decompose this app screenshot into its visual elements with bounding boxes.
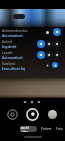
button[interactable]: Foto	[55, 126, 64, 132]
staticText: Automatisch	[2, 33, 23, 38]
button[interactable]: Rotate	[53, 40, 61, 48]
staticText: Nacht video	[20, 126, 37, 132]
button[interactable]: Locatie	[0, 51, 34, 62]
button[interactable]: Battery saver	[37, 51, 45, 59]
staticText: Eens alleen bij	[2, 66, 26, 71]
staticText: Antwoordmodus	[2, 29, 28, 33]
staticText: Automatisch	[2, 55, 23, 60]
button[interactable]: Flashlight	[45, 40, 53, 48]
button[interactable]: Nacht video	[20, 126, 37, 132]
staticText: Locatie	[2, 51, 13, 55]
button[interactable]: Data	[37, 40, 45, 48]
staticText: Geluid	[2, 40, 12, 44]
button[interactable]: Aspect ratio	[35, 98, 43, 106]
button[interactable]: Airplane	[45, 51, 53, 59]
button[interactable]: Geluid	[0, 40, 34, 51]
button[interactable]: Wifi	[53, 28, 61, 36]
button[interactable]: Switch camera	[7, 109, 18, 120]
button[interactable]: Flash	[21, 98, 29, 106]
staticText: Portret	[41, 127, 52, 131]
button[interactable]: Gallery	[48, 110, 57, 119]
button[interactable]: Bluetooth	[43, 28, 52, 37]
button[interactable]: Timer	[28, 98, 36, 106]
staticText: Foto	[56, 127, 63, 131]
staticText: Ingelicht	[2, 44, 17, 49]
button[interactable]: Hotspot	[44, 62, 50, 68]
button[interactable]: Kwaliteit	[0, 62, 34, 73]
button[interactable]: Antwoordmodus	[0, 29, 34, 40]
staticText: Kwaliteit	[2, 62, 16, 66]
button[interactable]: Night light	[52, 62, 58, 68]
button[interactable]: Take photo	[26, 108, 39, 121]
button[interactable]: Cast	[53, 51, 61, 59]
button[interactable]: Portret	[41, 126, 52, 132]
